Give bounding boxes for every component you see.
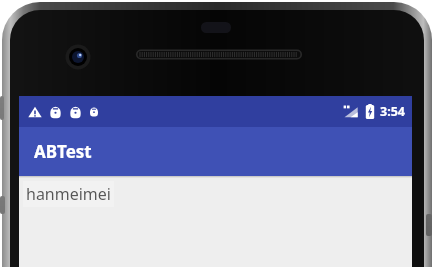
staticText: 3:54 bbox=[380, 103, 405, 120]
button[interactable]: hanmeimei bbox=[23, 181, 114, 207]
staticText: hanmeimei bbox=[26, 183, 111, 205]
staticText: ABTest bbox=[34, 140, 92, 163]
